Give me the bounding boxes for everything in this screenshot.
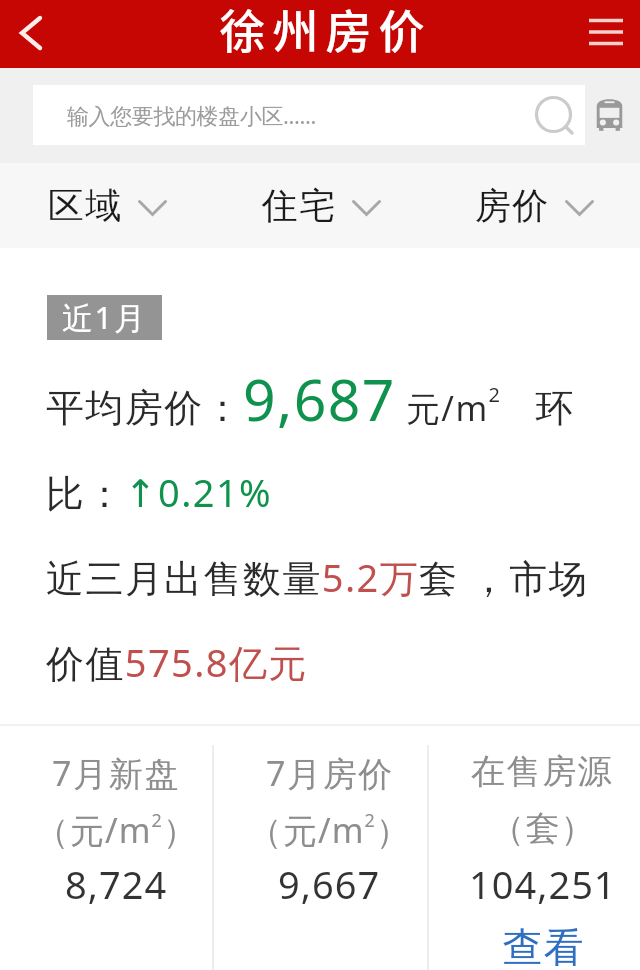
button[interactable]: 输入您要找的楼盘小区...... [33,85,585,145]
button[interactable]: 7月新盘 [0,726,214,970]
staticText: 输入您要找的楼盘小区...... [67,100,316,130]
staticText: （元/m2） [248,807,411,853]
staticText: 9,667 [278,858,381,910]
staticText: （元/m2） [35,807,198,853]
button[interactable]: Menu [578,0,640,68]
button[interactable]: 在售房源 [427,726,640,970]
button[interactable]: 查看 [502,922,584,970]
staticText: 住宅 [261,183,336,228]
staticText: 区域 [47,183,122,228]
button[interactable]: 房价 [427,163,640,248]
staticText: 8,724 [65,858,168,910]
staticText: 近1月 [62,296,147,338]
staticText: 104,251 [469,858,617,910]
staticText: 徐州房价 [216,0,428,62]
staticText: 在售房源 [471,750,614,793]
button[interactable]: 7月房价 [214,726,427,970]
staticText: 7月新盘 [52,750,180,796]
button[interactable]: 住宅 [214,163,427,248]
button[interactable]: 区域 [0,163,214,248]
staticText: （套） [490,807,595,850]
button[interactable]: Transit [583,85,635,145]
staticText: 平均房价：9,687 元/m2 环比：↑0.21% 近三月出售数量5.2万套 ，… [46,360,632,689]
staticText: 7月房价 [266,750,394,796]
button[interactable]: Back [0,0,62,68]
staticText: 查看 [502,922,584,970]
staticText: 房价 [474,183,549,228]
button[interactable]: Search [529,89,581,141]
